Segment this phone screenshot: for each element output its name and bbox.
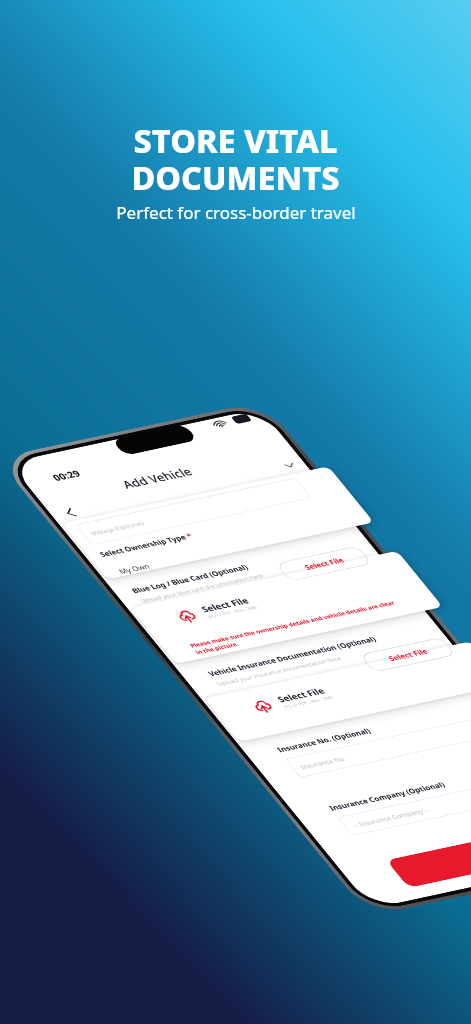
button[interactable]: Select File [249, 684, 335, 715]
button[interactable]: Select File [275, 546, 373, 581]
button[interactable]: Back [56, 504, 84, 521]
staticText: Select File [274, 685, 327, 704]
staticText: Add Vehicle [118, 464, 196, 492]
button[interactable]: Save [386, 814, 471, 888]
staticText: Vehicle Insurance Documentation (Optiona… [205, 634, 379, 678]
staticText: Insurance Company (Optional) [326, 780, 447, 813]
staticText: Upload your insurance documentation here [214, 654, 343, 687]
staticText: * [182, 531, 195, 541]
button[interactable] [62, 466, 374, 579]
staticText: Select File [386, 646, 430, 663]
button[interactable]: Select File [173, 594, 259, 625]
staticText: Blue Log / Blue Card (Optional) [129, 562, 251, 595]
staticText: Insurance No. [298, 754, 349, 771]
button[interactable] [204, 641, 471, 742]
staticText: Please make sure the ownership details a… [188, 599, 403, 656]
staticText: Select File [198, 595, 251, 614]
staticText: Insurance No. (Optional) [274, 726, 373, 754]
staticText: Select Ownership Type [97, 532, 188, 559]
staticText: Select File [302, 555, 346, 572]
staticText: My Own [116, 561, 152, 576]
button[interactable]: Mileage (Optional) [75, 477, 312, 545]
button[interactable]: Expand [278, 458, 301, 472]
staticText: Upload your blue card documentation here [138, 571, 265, 604]
staticText: JPG or PDF , Max , 3MB [207, 604, 259, 620]
button[interactable]: -- Insurance Company -- [337, 770, 471, 836]
button[interactable]: Select File [359, 637, 457, 673]
button[interactable] [130, 551, 443, 664]
staticText: Perfect for cross-border travel [116, 201, 356, 224]
staticText: Mileage (Optional) [88, 519, 146, 537]
button[interactable]: Insurance No. [285, 712, 471, 778]
staticText: -- Insurance Company -- [350, 806, 431, 829]
staticText: 00:29 [49, 467, 84, 483]
staticText: STORE VITAL DOCUMENTS [131, 118, 340, 200]
staticText: JPG or PDF , Max , 3MB [283, 695, 335, 710]
